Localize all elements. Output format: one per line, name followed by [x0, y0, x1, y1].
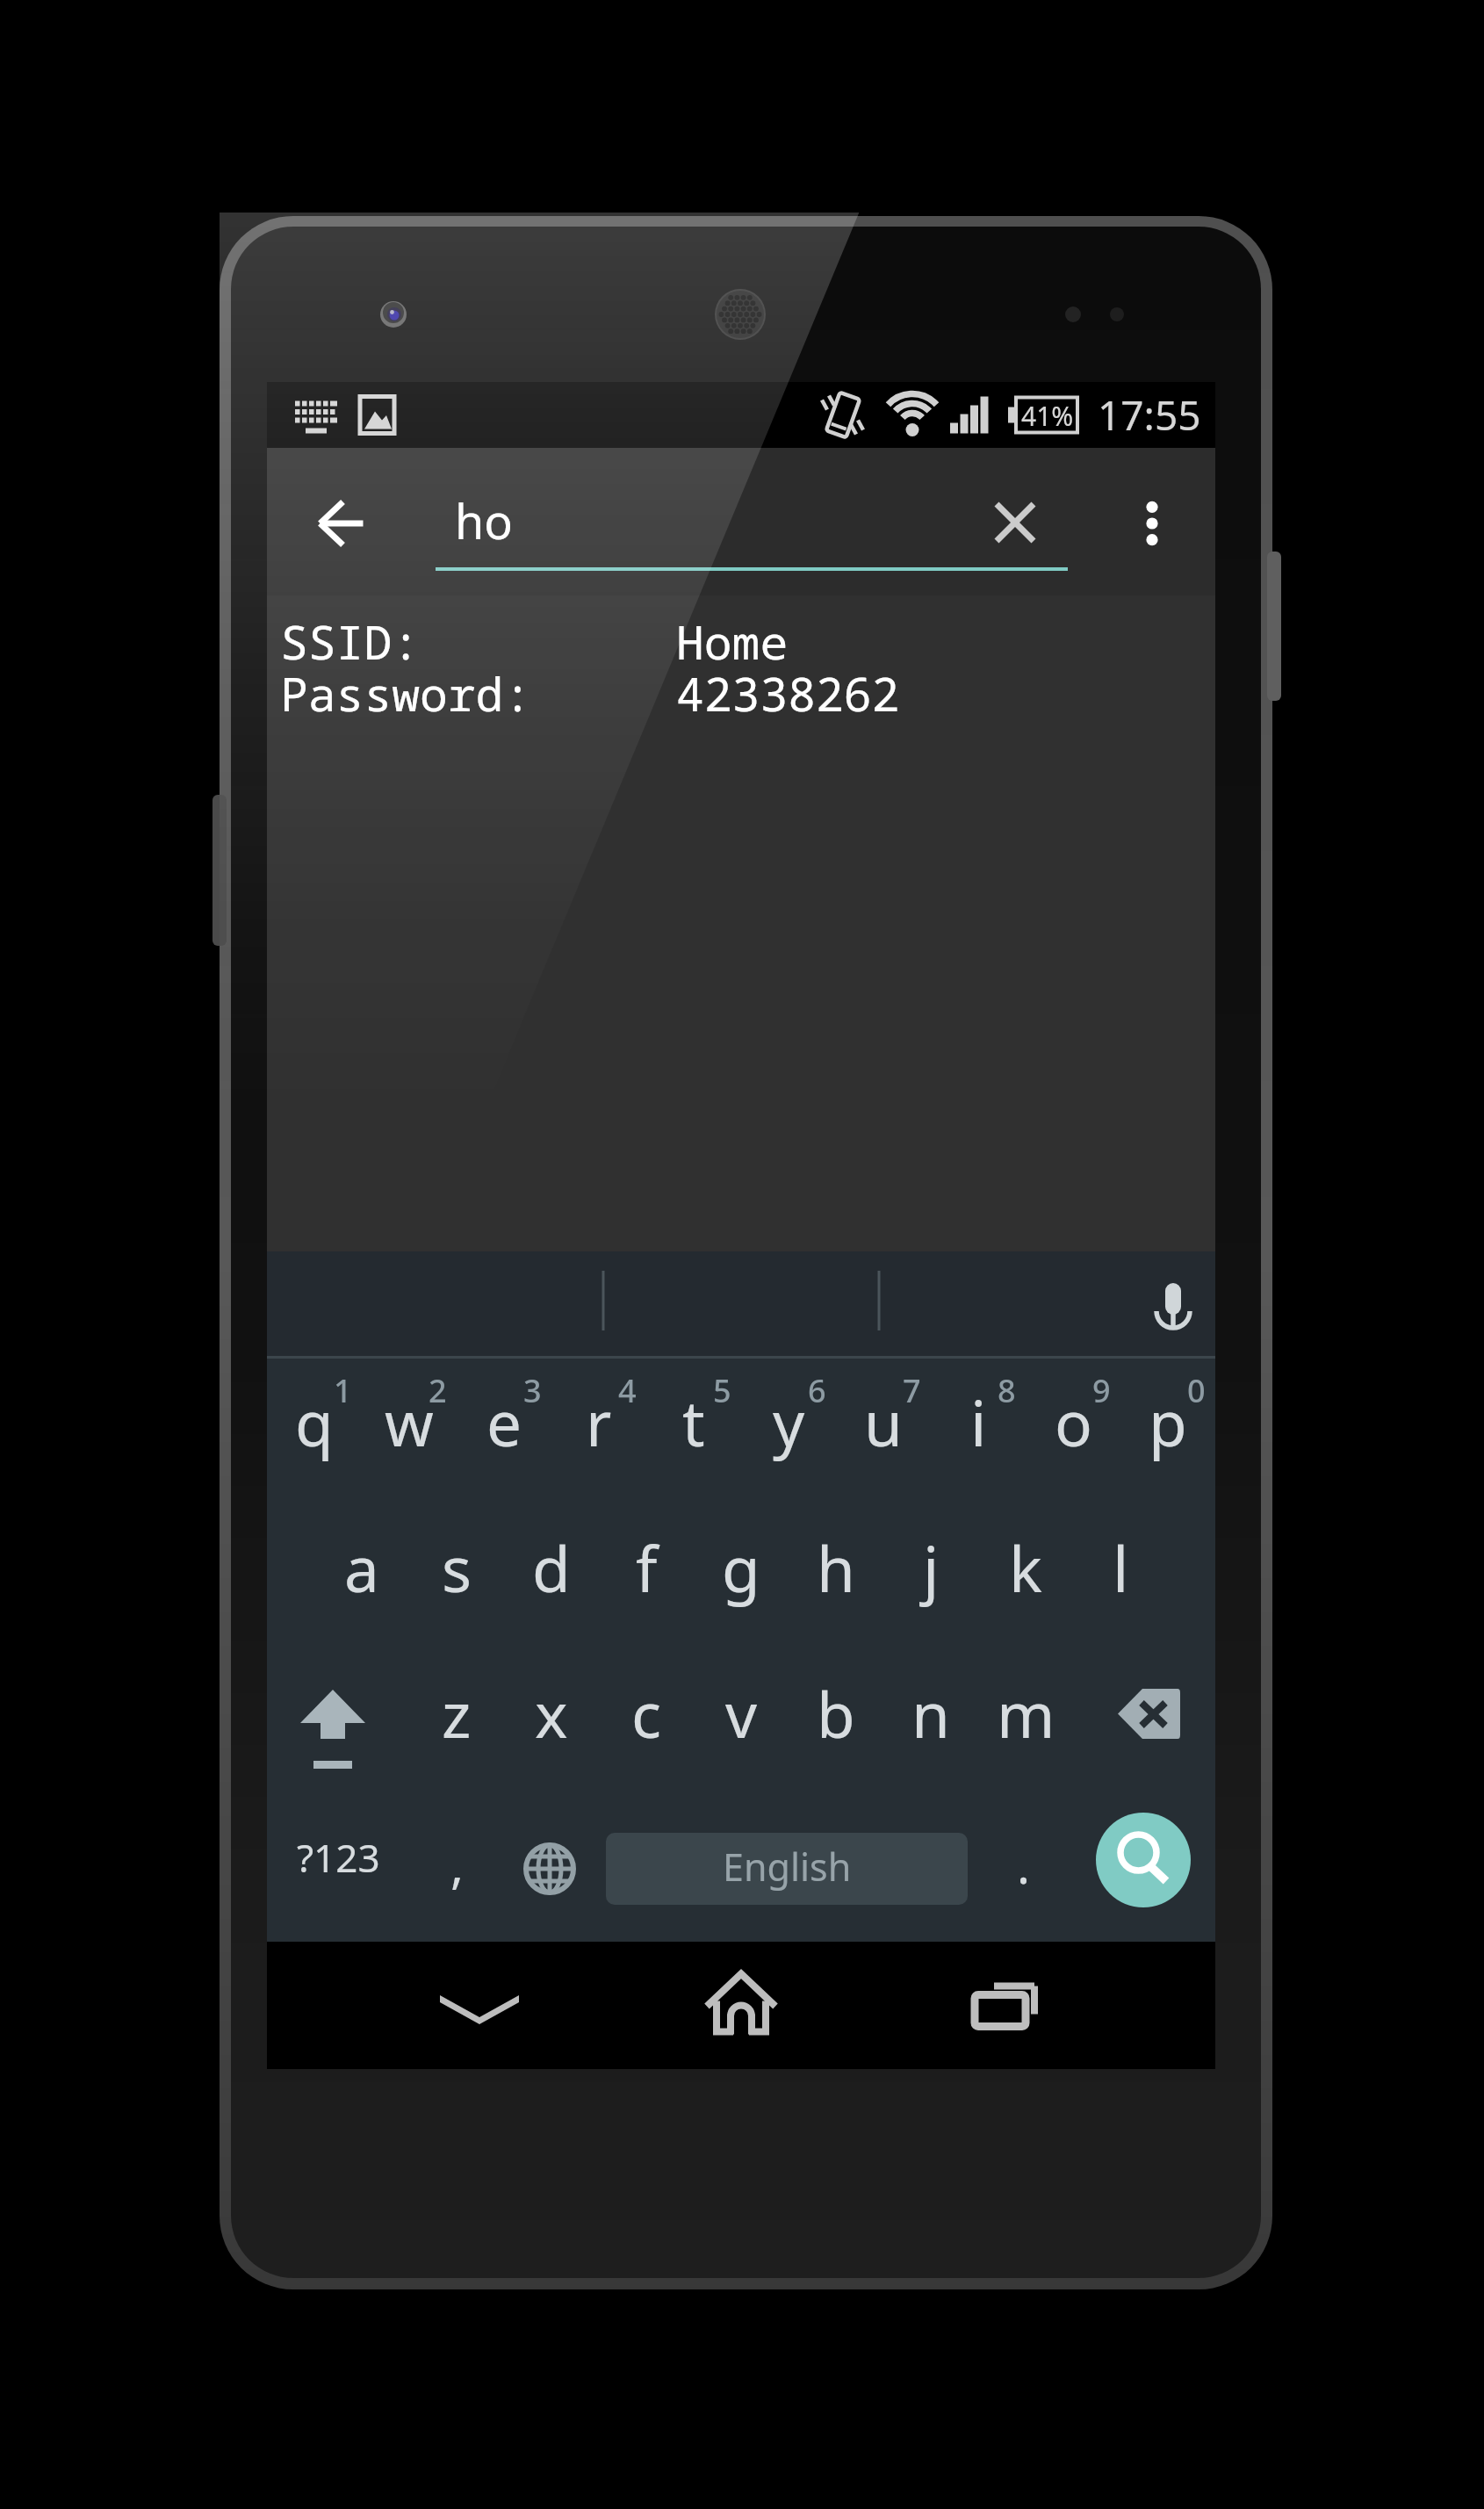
staticText: 9 — [1092, 1369, 1111, 1411]
staticText: 2 — [429, 1369, 447, 1411]
staticText: v — [725, 1671, 758, 1756]
button[interactable]: English — [606, 1833, 968, 1905]
button[interactable]: u — [836, 1359, 931, 1504]
staticText: w — [385, 1380, 434, 1465]
button[interactable]: c — [599, 1650, 694, 1796]
staticText: . — [1017, 1831, 1031, 1898]
staticText: 0 — [1187, 1369, 1206, 1411]
button[interactable]: More options — [1117, 488, 1187, 559]
staticText: c — [631, 1671, 662, 1756]
staticText: h — [817, 1525, 855, 1611]
button[interactable]: m — [978, 1650, 1073, 1796]
button[interactable]: v — [694, 1650, 789, 1796]
staticText: 42338262 — [676, 661, 900, 725]
staticText: ?123 — [297, 1831, 380, 1884]
staticText: y — [773, 1380, 805, 1465]
button[interactable]: Backspace — [1073, 1650, 1215, 1796]
staticText: ho — [455, 488, 514, 553]
staticText: 3 — [523, 1369, 542, 1411]
staticText: l — [1113, 1525, 1129, 1611]
staticText: i — [970, 1380, 987, 1465]
staticText: d — [532, 1525, 571, 1611]
staticText: Home — [676, 609, 789, 673]
staticText: 1 — [334, 1369, 352, 1411]
staticText: 8 — [998, 1369, 1016, 1411]
button[interactable]: g — [694, 1504, 789, 1650]
button[interactable]: b — [789, 1650, 883, 1796]
staticText: n — [911, 1671, 950, 1756]
button[interactable]: w — [362, 1359, 457, 1504]
staticText: e — [486, 1380, 522, 1465]
button[interactable]: d — [504, 1504, 599, 1650]
button[interactable]: Recent apps — [934, 1964, 1075, 2047]
staticText: b — [817, 1671, 855, 1756]
staticText: 5 — [713, 1369, 731, 1411]
button[interactable]: e — [457, 1359, 551, 1504]
staticText: a — [344, 1525, 379, 1611]
staticText: m — [997, 1671, 1055, 1756]
staticText: t — [682, 1380, 705, 1465]
button[interactable]: Voice input — [1135, 1266, 1212, 1344]
staticText: f — [636, 1525, 658, 1611]
staticText: k — [1009, 1525, 1042, 1611]
button[interactable]: Search — [1096, 1813, 1191, 1907]
button[interactable]: k — [978, 1504, 1073, 1650]
button[interactable]: j — [883, 1504, 978, 1650]
staticText: r — [586, 1380, 612, 1465]
button[interactable]: x — [504, 1650, 599, 1796]
button[interactable]: ?123 — [267, 1796, 409, 1942]
button[interactable]: i — [931, 1359, 1026, 1504]
staticText: , — [450, 1831, 465, 1898]
button[interactable]: p — [1120, 1359, 1215, 1504]
button[interactable]: r — [551, 1359, 646, 1504]
staticText: 7 — [903, 1369, 921, 1411]
button[interactable]: s — [409, 1504, 504, 1650]
staticText: 17:55 — [1098, 387, 1201, 443]
staticText: q — [295, 1380, 334, 1465]
staticText: English — [723, 1841, 852, 1893]
staticText: o — [1055, 1380, 1092, 1465]
button[interactable]: Clear query — [980, 487, 1050, 558]
button[interactable]: a — [314, 1504, 409, 1650]
button[interactable]: y — [741, 1359, 836, 1504]
staticText: s — [442, 1525, 472, 1611]
button[interactable]: Home — [671, 1955, 811, 2056]
staticText: j — [923, 1525, 940, 1611]
button[interactable]: z — [409, 1650, 504, 1796]
button[interactable]: Hide keyboard — [409, 1966, 550, 2045]
button[interactable]: o — [1026, 1359, 1120, 1504]
staticText: 41% — [1021, 398, 1074, 434]
staticText: Password: — [280, 661, 532, 725]
button[interactable]: n — [883, 1650, 978, 1796]
button[interactable]: . — [980, 1796, 1068, 1942]
staticText: SSID: — [280, 609, 420, 673]
button[interactable]: h — [789, 1504, 883, 1650]
staticText: 4 — [618, 1369, 637, 1411]
button[interactable]: Navigate up — [306, 488, 377, 559]
button[interactable]: l — [1073, 1504, 1168, 1650]
staticText: 6 — [808, 1369, 826, 1411]
staticText: x — [535, 1671, 568, 1756]
button[interactable]: q — [267, 1359, 362, 1504]
button[interactable]: Switch language — [506, 1796, 594, 1942]
staticText: p — [1149, 1380, 1187, 1465]
button[interactable]: t — [646, 1359, 741, 1504]
button[interactable]: Shift — [267, 1650, 409, 1796]
button[interactable]: f — [599, 1504, 694, 1650]
staticText: g — [722, 1525, 760, 1611]
button[interactable]: , — [409, 1796, 506, 1942]
staticText: u — [864, 1380, 903, 1465]
staticText: z — [442, 1671, 472, 1756]
